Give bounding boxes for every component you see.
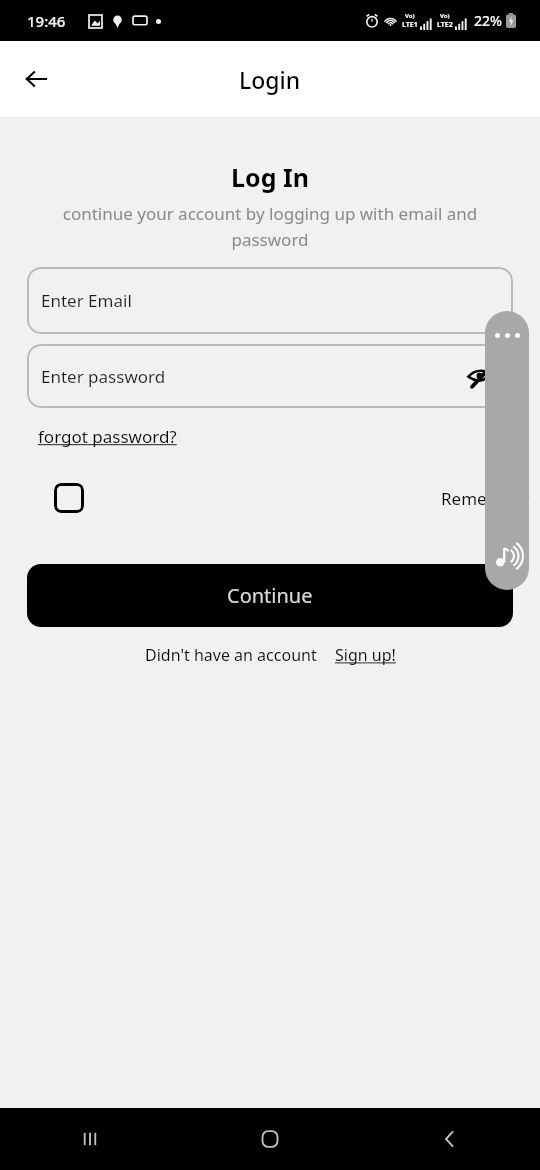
- staticText: Log In: [0, 160, 540, 194]
- button[interactable]: Enter Email: [27, 267, 513, 334]
- staticText: Enter Email: [41, 289, 132, 312]
- staticText: 22%: [474, 11, 502, 30]
- staticText: Vo): [440, 12, 450, 20]
- staticText: Enter password: [41, 365, 166, 388]
- staticText: Continue: [227, 582, 313, 609]
- button[interactable]: Floating music widget: [485, 311, 529, 590]
- button[interactable]: Home: [180, 1108, 360, 1170]
- button[interactable]: Remember me: [54, 483, 84, 513]
- button[interactable]: Continue: [27, 564, 513, 627]
- button[interactable]: Show password: [461, 356, 501, 396]
- staticText: Vo): [405, 12, 415, 20]
- staticText: continue your account by logging up with…: [32, 202, 508, 251]
- staticText: Didn't have an account: [145, 644, 317, 666]
- button[interactable]: Sign up!: [335, 644, 396, 666]
- button[interactable]: Enter password: [27, 344, 523, 408]
- staticText: LTE1: [402, 20, 418, 30]
- button[interactable]: Back: [12, 55, 60, 103]
- button[interactable]: forgot password?: [38, 425, 177, 448]
- staticText: LTE2: [437, 20, 453, 30]
- button[interactable]: Back: [360, 1108, 540, 1170]
- button[interactable]: Remember: [441, 487, 530, 510]
- staticText: Login: [239, 64, 301, 95]
- staticText: 19:46: [27, 11, 66, 31]
- button[interactable]: Recents: [0, 1108, 180, 1170]
